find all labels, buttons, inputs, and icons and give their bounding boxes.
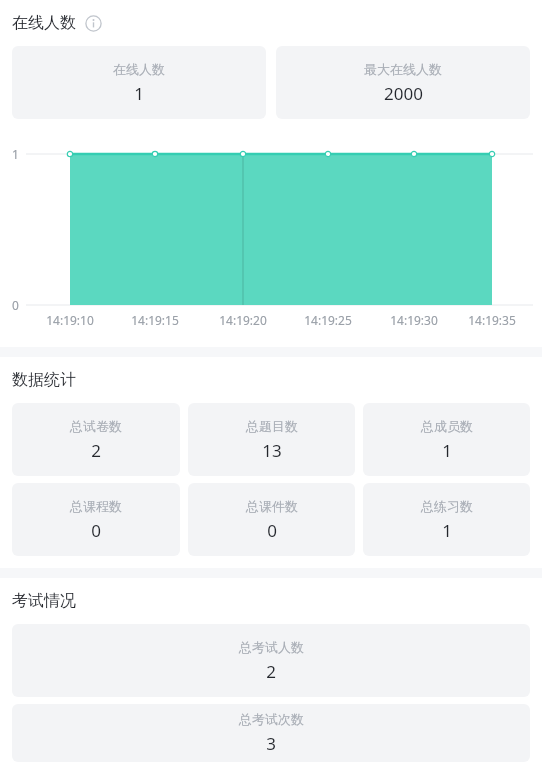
staticText: 2000	[384, 82, 423, 105]
staticText: 在线人数	[113, 61, 165, 77]
staticText: 2	[266, 660, 276, 683]
staticText: 总考试人数	[239, 639, 304, 655]
button[interactable]: 总课程数	[12, 483, 180, 556]
button[interactable]: 总成员数	[363, 403, 530, 476]
staticText: 在线人数	[12, 13, 76, 33]
staticText: 0	[12, 297, 19, 313]
staticText: 13	[262, 439, 282, 462]
staticText: 14:19:10	[30, 312, 110, 328]
staticText: 14:19:15	[115, 312, 195, 328]
staticText: 数据统计	[12, 370, 76, 390]
staticText: 考试情况	[12, 591, 76, 611]
staticText: 14:19:35	[452, 312, 532, 328]
button[interactable]: 总考试人数	[12, 624, 530, 697]
button[interactable]: 在线人数	[12, 46, 266, 119]
staticText: 总考试次数	[239, 711, 304, 727]
button[interactable]: 最大在线人数	[276, 46, 530, 119]
staticText: 1	[12, 146, 19, 162]
staticText: 2	[91, 439, 101, 462]
staticText: 总试卷数	[70, 418, 122, 434]
staticText: 3	[266, 732, 276, 755]
staticText: 1	[442, 519, 452, 542]
button[interactable]: 在线人数说明	[85, 15, 102, 32]
button[interactable]: 总考试次数	[12, 704, 530, 762]
staticText: 总成员数	[421, 418, 473, 434]
staticText: 总课件数	[246, 498, 298, 514]
button[interactable]: 总课件数	[188, 483, 355, 556]
button[interactable]: 总题目数	[188, 403, 355, 476]
staticText: 14:19:30	[374, 312, 454, 328]
staticText: 最大在线人数	[364, 61, 442, 77]
staticText: 14:19:25	[288, 312, 368, 328]
staticText: 0	[91, 519, 101, 542]
staticText: 总练习数	[421, 498, 473, 514]
button[interactable]: 总试卷数	[12, 403, 180, 476]
staticText: 总课程数	[70, 498, 122, 514]
staticText: 0	[267, 519, 277, 542]
staticText: 总题目数	[246, 418, 298, 434]
button[interactable]: 总练习数	[363, 483, 530, 556]
staticText: 1	[134, 82, 144, 105]
staticText: 14:19:20	[203, 312, 283, 328]
staticText: 1	[442, 439, 452, 462]
